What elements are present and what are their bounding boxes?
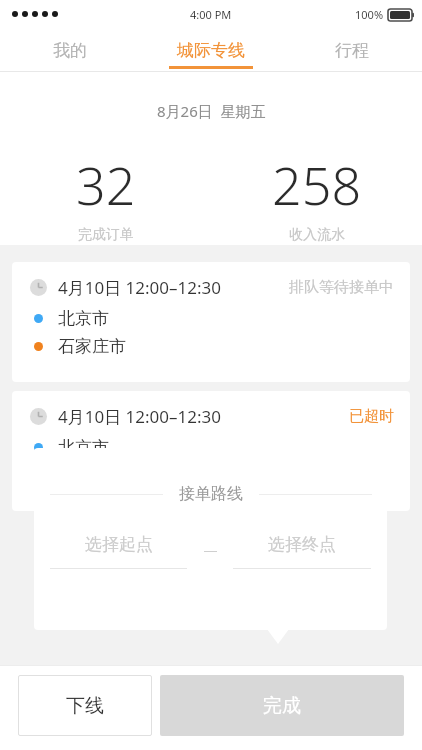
staticText: 4月10日 12:00–12:30 [58,405,221,428]
staticText: 选择终点 [268,534,336,555]
staticText: 石家庄市 [58,336,126,357]
staticText: 完成订单 [78,226,134,244]
button[interactable]: 4月10日 12:00–12:30 [12,262,410,382]
staticText: 完成 [263,694,301,718]
staticText: 城际专线 [177,40,245,61]
staticText: 100% [355,7,384,22]
button[interactable]: 下线 [18,675,152,736]
staticText: 8月26日 星期五 [157,101,266,121]
button[interactable]: 我的 [0,28,140,72]
button[interactable]: 行程 [281,28,422,72]
staticText: 北京市 [58,308,109,329]
staticText: 4:00 PM [190,7,232,22]
staticText: 32 [76,149,136,220]
button[interactable]: 选择起点 [44,534,193,569]
staticText: 接单路线 [179,484,243,504]
staticText: 下线 [66,694,104,718]
staticText: 收入流水 [289,226,345,244]
staticText: 4月10日 12:00–12:30 [58,276,221,299]
staticText: 选择起点 [85,534,153,555]
button[interactable]: 4月10日 12:00–12:30 [12,391,410,511]
staticText: 排队等待接单中 [289,278,394,297]
staticText: 北京市 [58,437,109,458]
staticText: 已超时 [349,407,394,426]
button[interactable]: 选择终点 [227,534,377,569]
staticText: 258 [272,149,362,220]
staticText: 我的 [53,40,87,61]
button[interactable]: 城际专线 [140,28,281,72]
staticText: 行程 [335,40,369,61]
button[interactable]: 完成 [160,675,404,736]
